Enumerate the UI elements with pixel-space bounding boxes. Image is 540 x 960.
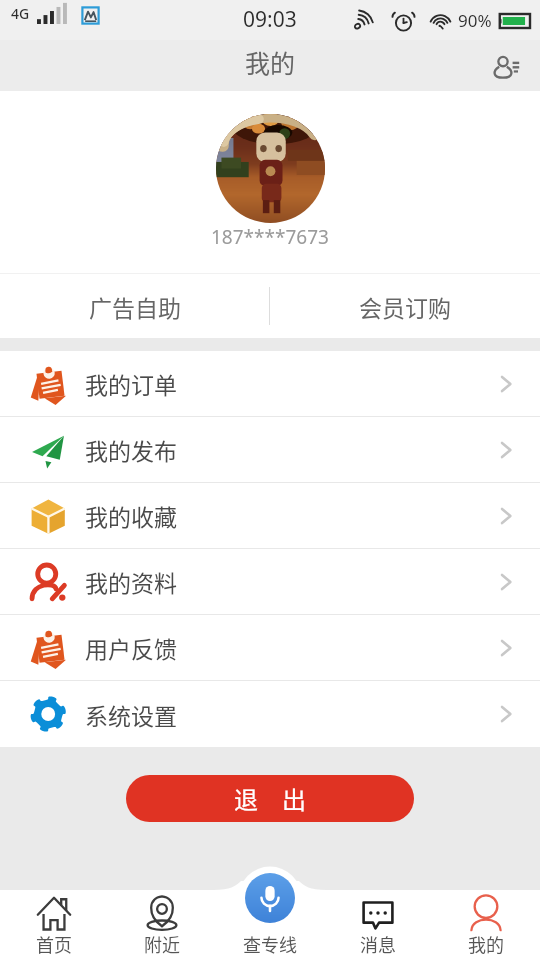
staticText: 附近 — [144, 931, 180, 957]
button[interactable]: 我的发布 — [0, 417, 540, 483]
button[interactable]: Avatar — [216, 114, 325, 223]
button[interactable]: 系统设置 — [0, 681, 540, 747]
button[interactable]: 我的 — [432, 868, 540, 960]
staticText: 90% — [458, 9, 492, 32]
staticText: 我的收藏 — [85, 499, 177, 532]
staticText: 4G — [11, 4, 30, 23]
staticText: 我的 — [245, 44, 296, 80]
staticText: 广告自助 — [89, 290, 181, 323]
staticText: 查专线 — [243, 931, 297, 957]
staticText: 会员订购 — [359, 290, 451, 323]
button[interactable]: 首页 — [0, 868, 108, 960]
button[interactable]: 附近 — [108, 868, 216, 960]
button[interactable]: Voice search — [245, 873, 295, 923]
staticText: 187****7673 — [211, 224, 329, 250]
button[interactable]: 我的订单 — [0, 351, 540, 417]
staticText: 首页 — [36, 931, 72, 957]
button[interactable]: 退 出 — [126, 775, 414, 822]
staticText: 09:03 — [243, 5, 297, 34]
staticText: 退 出 — [234, 781, 306, 816]
staticText: 我的订单 — [85, 367, 177, 400]
staticText: 消息 — [360, 931, 396, 957]
button[interactable]: 我的资料 — [0, 549, 540, 615]
button[interactable]: 用户反馈 — [0, 615, 540, 681]
button[interactable]: 广告自助 — [0, 274, 269, 338]
button[interactable]: 查专线 — [216, 868, 324, 960]
button[interactable]: 我的收藏 — [0, 483, 540, 549]
staticText: 用户反馈 — [85, 631, 177, 664]
staticText: 我的发布 — [85, 433, 177, 466]
button[interactable]: 消息 — [324, 868, 432, 960]
staticText: 我的 — [468, 931, 504, 957]
staticText: 系统设置 — [85, 698, 177, 731]
button[interactable]: Contacts — [486, 46, 526, 86]
button[interactable]: 会员订购 — [270, 274, 540, 338]
staticText: 我的资料 — [85, 565, 177, 598]
